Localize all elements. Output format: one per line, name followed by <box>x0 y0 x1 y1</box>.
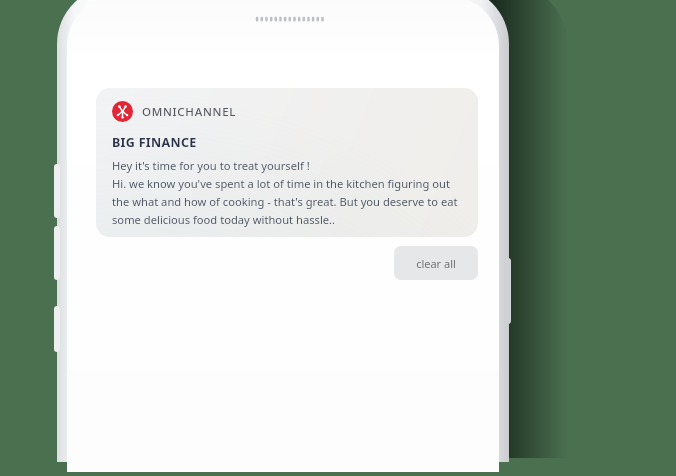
other: Volume up <box>54 164 60 218</box>
staticText: clear all <box>416 256 456 271</box>
other: Assistant key <box>54 306 60 352</box>
other: Power <box>505 258 511 324</box>
other: Volume down <box>54 226 60 280</box>
staticText: Hey it's time for you to treat yourself … <box>112 158 310 173</box>
staticText: BIG FINANCE <box>112 134 197 151</box>
button[interactable]: OMNICHANNEL <box>96 88 478 237</box>
button[interactable]: clear all <box>394 246 478 280</box>
staticText: Hi. we know you've spent a lot of time i… <box>112 176 464 227</box>
staticText: OMNICHANNEL <box>142 104 237 120</box>
